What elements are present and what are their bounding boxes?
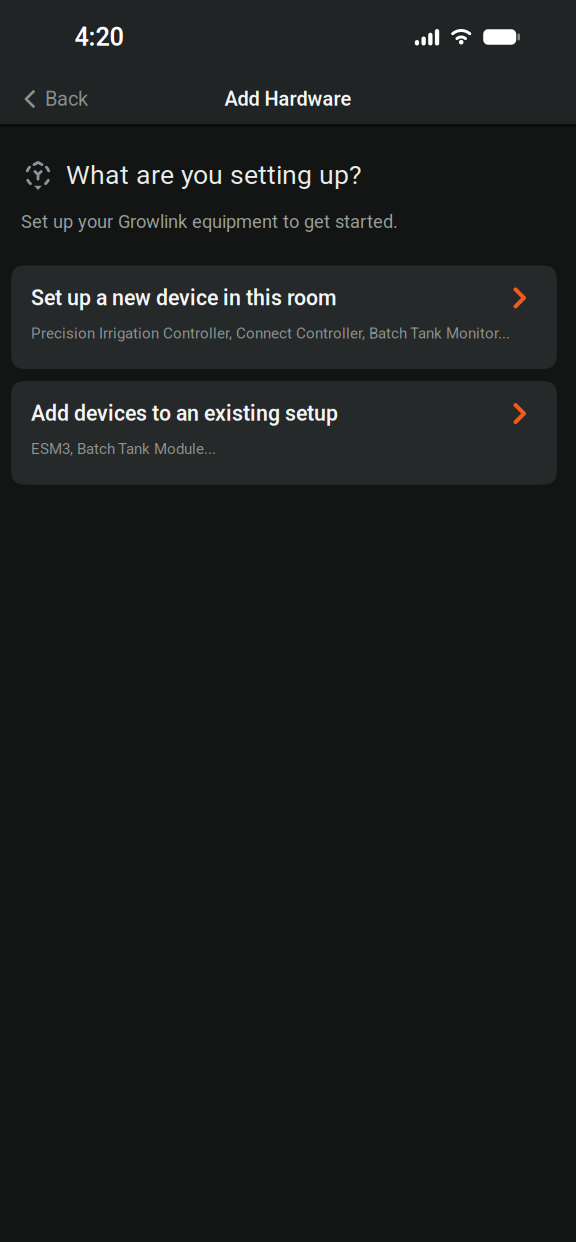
button[interactable]: Back <box>0 87 88 111</box>
button[interactable]: Add devices to an existing setup <box>11 381 557 485</box>
staticText: Precision Irrigation Controller, Connect… <box>31 324 510 342</box>
staticText: Set up a new device in this room <box>31 285 337 310</box>
staticText: Add Hardware <box>224 87 351 111</box>
staticText: What are you setting up? <box>66 159 362 191</box>
staticText: Set up your Growlink equipment to get st… <box>21 211 398 232</box>
button[interactable]: Set up a new device in this room <box>11 265 557 369</box>
staticText: Back <box>45 87 88 111</box>
staticText: 4:20 <box>74 22 123 52</box>
staticText: Add devices to an existing setup <box>31 401 338 426</box>
staticText: ESM3, Batch Tank Module... <box>31 440 216 458</box>
